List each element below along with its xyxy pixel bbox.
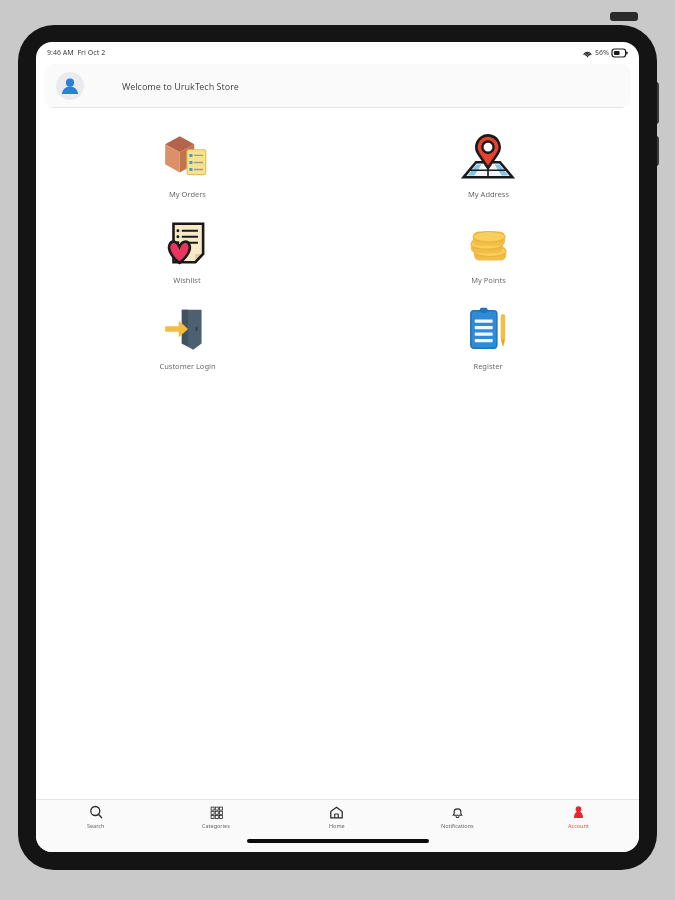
button[interactable]: My Address	[426, 127, 550, 203]
staticText: Customer Login	[159, 361, 216, 371]
button[interactable]: Categories	[156, 800, 276, 838]
staticText: Notifications	[441, 822, 474, 829]
button[interactable]: Search	[36, 800, 156, 838]
staticText: 9:46 AM Fri Oct 2	[47, 48, 106, 58]
button[interactable]: Notifications	[397, 800, 518, 838]
button[interactable]: Account	[518, 800, 639, 838]
button[interactable]: Profile	[44, 64, 631, 108]
staticText: Account	[568, 822, 589, 829]
other: Profile	[56, 72, 84, 100]
staticText: Register	[473, 361, 503, 371]
staticText: My Points	[471, 275, 506, 285]
staticText: Home	[329, 822, 345, 829]
button[interactable]: Register	[426, 299, 550, 375]
button[interactable]: My Points	[426, 213, 550, 289]
button[interactable]: Wishlist	[125, 213, 249, 289]
staticText: 56%	[595, 48, 609, 58]
staticText: Categories	[202, 822, 230, 829]
staticText: Welcome to UrukTech Store	[122, 80, 239, 92]
staticText: Wishlist	[173, 275, 201, 285]
staticText: My Orders	[169, 189, 206, 199]
button[interactable]: Customer Login	[125, 299, 249, 375]
button[interactable]: Home	[276, 800, 397, 838]
staticText: My Address	[468, 189, 509, 199]
button[interactable]: My Orders	[125, 127, 249, 203]
staticText: Search	[87, 822, 105, 829]
